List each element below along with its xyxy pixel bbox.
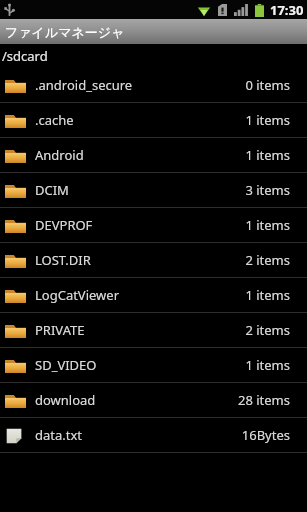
staticText: 1 items — [245, 286, 290, 304]
staticText: 16Bytes — [241, 426, 290, 444]
staticText: 17:30 — [270, 1, 304, 19]
staticText: PRIVATE — [35, 321, 85, 339]
staticText: 0 items — [245, 76, 290, 94]
staticText: 1 items — [245, 216, 290, 234]
staticText: download — [35, 391, 96, 409]
button[interactable]: download — [0, 383, 307, 417]
staticText: DCIM — [35, 181, 69, 199]
staticText: 1 items — [245, 111, 290, 129]
staticText: 2 items — [245, 251, 290, 269]
staticText: 2 items — [245, 321, 290, 339]
staticText: LogCatViewer — [35, 286, 120, 304]
button[interactable]: .cache — [0, 103, 307, 137]
staticText: 28 items — [237, 391, 290, 409]
staticText: .cache — [35, 111, 74, 129]
staticText: data.txt — [35, 426, 83, 444]
staticText: SD_VIDEO — [35, 356, 97, 374]
staticText: 1 items — [245, 146, 290, 164]
staticText: ファイルマネージャ — [5, 24, 125, 40]
button[interactable]: DEVPROF — [0, 208, 307, 242]
button[interactable]: Android — [0, 138, 307, 172]
button[interactable]: .android_secure — [0, 68, 307, 102]
staticText: .android_secure — [35, 76, 133, 94]
button[interactable]: LOST.DIR — [0, 243, 307, 277]
staticText: DEVPROF — [35, 216, 93, 234]
button[interactable]: DCIM — [0, 173, 307, 207]
staticText: LOST.DIR — [35, 251, 91, 269]
staticText: Android — [35, 146, 84, 164]
staticText: 1 items — [245, 356, 290, 374]
staticText: /sdcard — [2, 47, 48, 65]
button[interactable]: data.txt — [0, 418, 307, 452]
other: USB connected — [3, 3, 16, 17]
staticText: 3 items — [245, 181, 290, 199]
button[interactable]: LogCatViewer — [0, 278, 307, 312]
button[interactable]: PRIVATE — [0, 313, 307, 347]
button[interactable]: SD_VIDEO — [0, 348, 307, 382]
